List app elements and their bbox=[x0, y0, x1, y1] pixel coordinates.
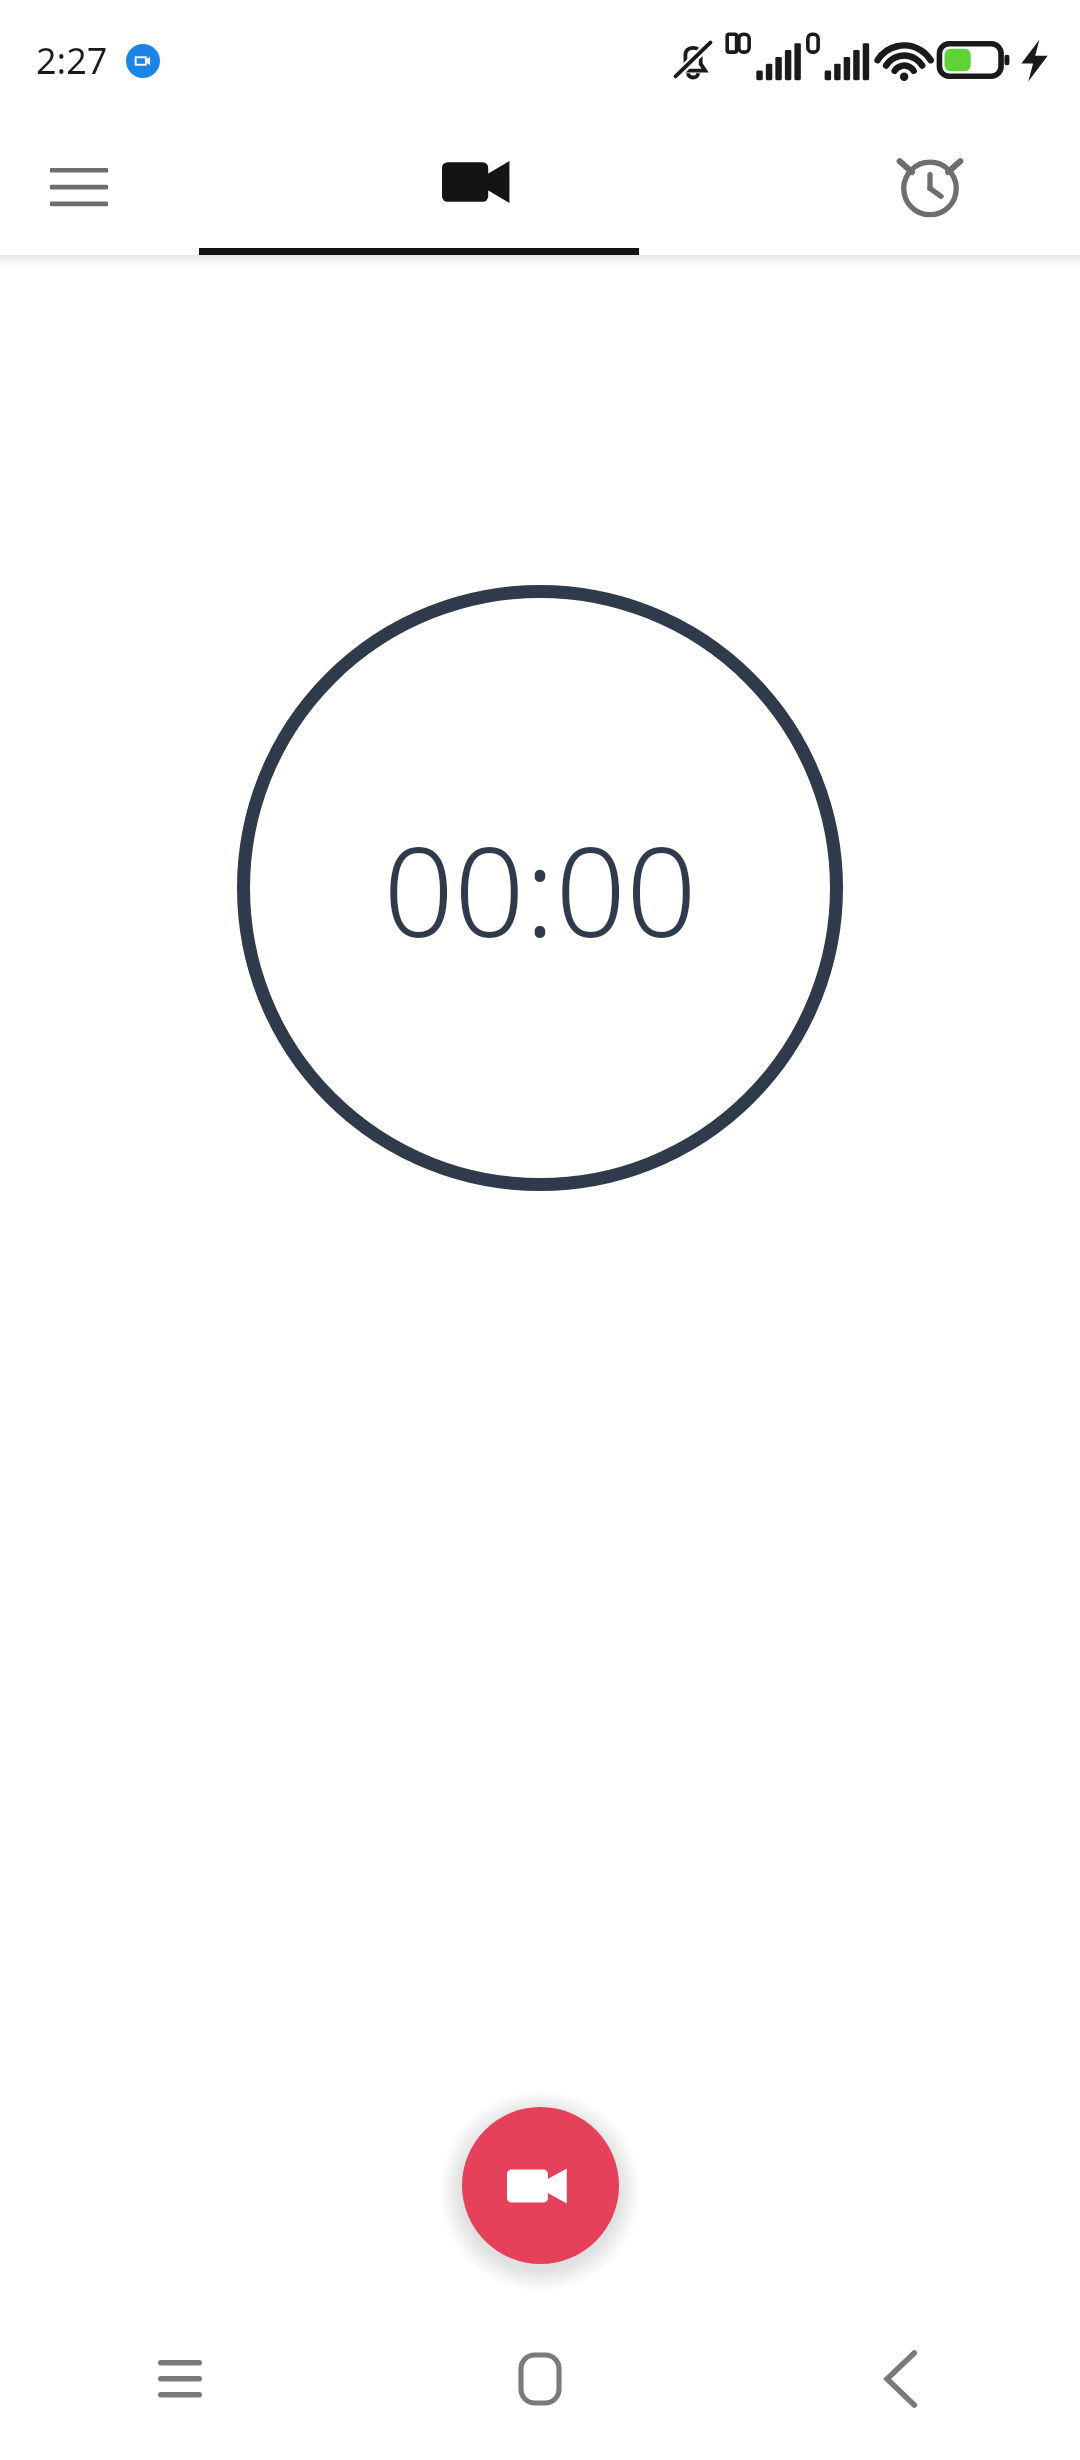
button[interactable]: Recorder bbox=[200, 120, 760, 255]
button[interactable]: Start recording bbox=[462, 2107, 619, 2264]
button[interactable]: Menu bbox=[0, 120, 200, 255]
button[interactable]: Alarm bbox=[760, 120, 1080, 255]
button[interactable]: Back bbox=[720, 2314, 1080, 2460]
staticText: 00:00 bbox=[383, 804, 697, 973]
button[interactable]: Home bbox=[360, 2314, 720, 2460]
button[interactable]: Recent apps bbox=[0, 2314, 360, 2460]
staticText: 2:27 bbox=[36, 36, 108, 85]
